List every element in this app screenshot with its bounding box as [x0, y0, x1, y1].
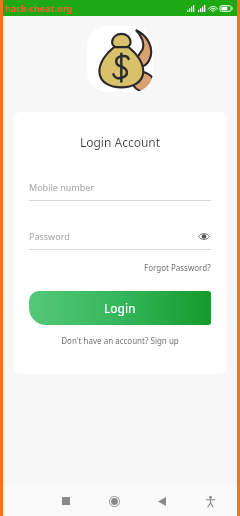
- button[interactable]: Show password: [197, 229, 211, 243]
- button[interactable]: Recent apps: [55, 490, 77, 512]
- button[interactable]: Home: [103, 490, 125, 512]
- button[interactable]: Mobile number: [29, 178, 211, 201]
- staticText: hack-cheat.org: [5, 2, 73, 14]
- button[interactable]: Don't have an account? Sign up: [29, 335, 211, 346]
- staticText: Mobile number: [29, 181, 95, 193]
- button[interactable]: Password: [29, 227, 211, 250]
- button[interactable]: Login: [29, 291, 211, 325]
- button[interactable]: Accessibility: [199, 490, 221, 512]
- staticText: Password: [29, 230, 70, 242]
- staticText: Login Account: [29, 134, 211, 150]
- button[interactable]: Back: [151, 490, 173, 512]
- staticText: Login: [104, 300, 136, 316]
- button[interactable]: Forgot Password?: [144, 260, 211, 275]
